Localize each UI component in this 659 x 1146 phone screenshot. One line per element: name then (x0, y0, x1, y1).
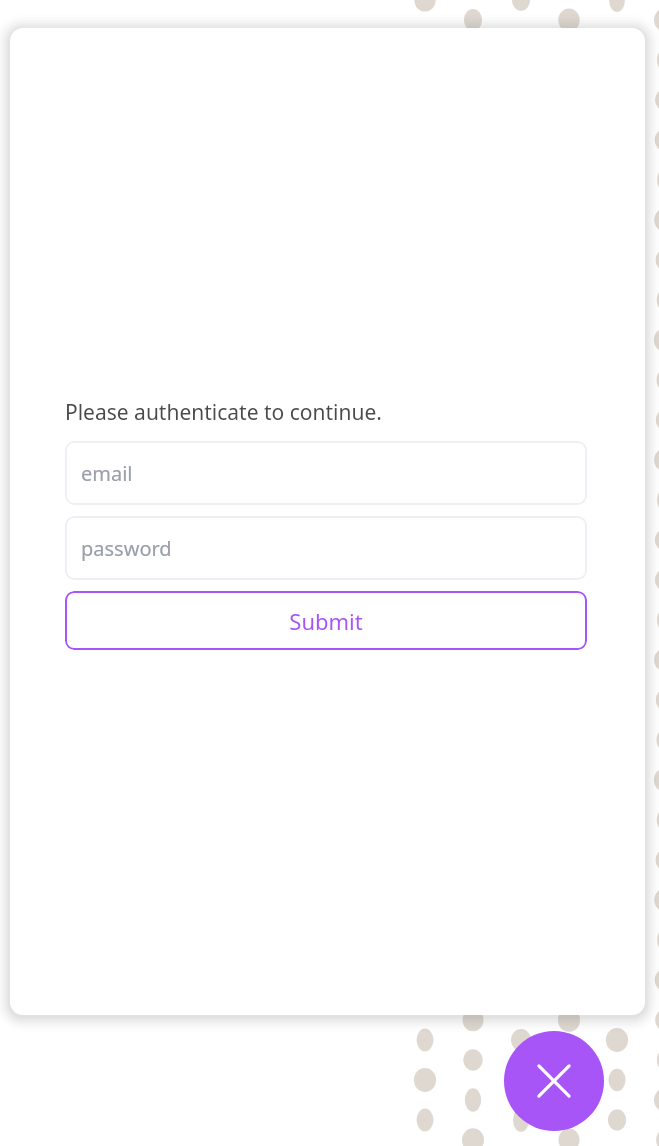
button[interactable]: Close (504, 1031, 604, 1131)
button[interactable]: email (65, 441, 587, 505)
staticText: password (81, 535, 172, 562)
staticText: Please authenticate to continue. (65, 398, 382, 427)
button[interactable]: password (65, 516, 587, 580)
staticText: email (81, 460, 133, 487)
button[interactable]: Submit (65, 591, 587, 650)
staticText: Submit (289, 606, 363, 636)
